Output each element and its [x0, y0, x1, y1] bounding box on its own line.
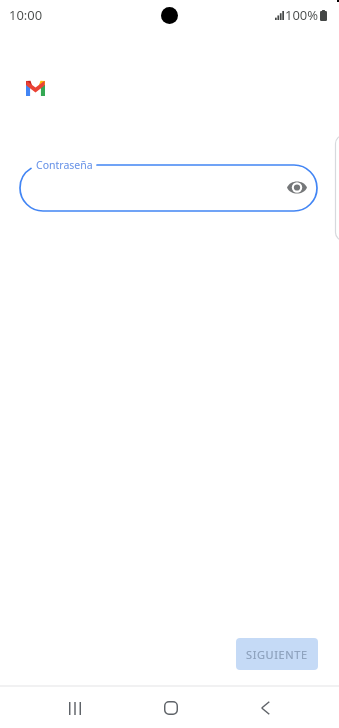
button[interactable]: Atrás [243, 688, 288, 728]
staticText: Contraseña [36, 158, 93, 172]
staticText: 10:00 [9, 6, 43, 24]
button[interactable]: Contraseña [20, 165, 317, 211]
button[interactable]: Inicio [148, 688, 193, 728]
staticText: SIGUIENTE [246, 647, 308, 662]
button[interactable]: Mostrar contraseña [278, 169, 315, 206]
button[interactable]: Recientes [52, 688, 97, 728]
staticText: 100% [285, 6, 319, 24]
button[interactable]: SIGUIENTE [236, 638, 318, 670]
